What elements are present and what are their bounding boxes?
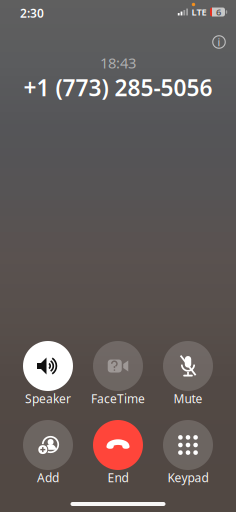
button[interactable]: Speaker	[13, 341, 83, 404]
staticText: Mute	[173, 390, 202, 406]
staticText: End	[107, 469, 128, 485]
staticText: FaceTime	[91, 390, 145, 406]
staticText: LTE	[191, 6, 206, 18]
button[interactable]: FaceTime	[83, 341, 153, 404]
staticText: 18:43	[100, 53, 136, 72]
button[interactable]: Add	[13, 420, 83, 483]
staticText: i	[217, 35, 220, 49]
button[interactable]: Mute	[153, 341, 223, 404]
staticText: 2:30	[20, 5, 44, 21]
button[interactable]: End	[83, 420, 153, 483]
staticText: Add	[37, 469, 59, 485]
staticText: 6	[216, 6, 221, 18]
button[interactable]: Keypad	[153, 420, 223, 483]
staticText: Speaker	[25, 390, 71, 406]
button[interactable]: Call info	[207, 30, 231, 54]
staticText: Keypad	[167, 469, 208, 485]
staticText: +1 (773) 285-5056	[23, 72, 212, 103]
